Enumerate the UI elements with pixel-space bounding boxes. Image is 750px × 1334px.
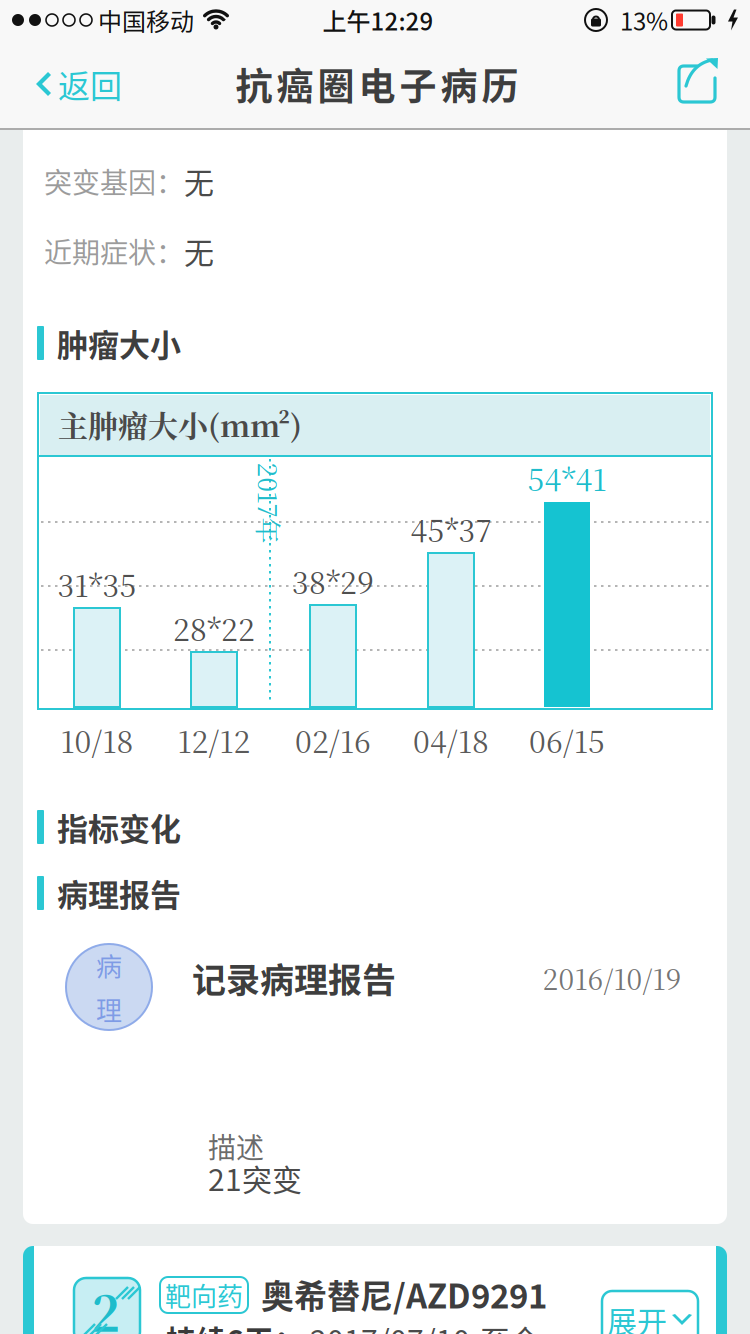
staticText: 2: [91, 1276, 120, 1334]
staticText: 10/18: [60, 718, 133, 761]
staticText: 突变基因：: [44, 161, 184, 201]
button[interactable]: [677, 60, 719, 106]
staticText: 2016/10/19: [542, 958, 681, 998]
staticText: 上午12:29: [322, 3, 433, 37]
staticText: 04/18: [413, 718, 489, 761]
staticText: 记录病理报告: [192, 953, 396, 1003]
button[interactable]: 病: [23, 930, 727, 1044]
staticText: 指标变化: [57, 805, 181, 849]
staticText: 返回: [58, 61, 122, 107]
staticText: 54*41: [527, 456, 606, 499]
staticText: 病理报告: [57, 871, 181, 915]
staticText: 45*37: [410, 507, 491, 550]
staticText: 无: [184, 159, 214, 203]
staticText: 02/16: [295, 718, 371, 761]
button[interactable]: 展开: [602, 1291, 698, 1334]
staticText: 2017年: [228, 484, 309, 522]
staticText: 31*35: [57, 562, 136, 605]
staticText: 持续6天：: [166, 1317, 304, 1334]
staticText: 中国移动: [98, 3, 194, 37]
button[interactable]: 返回: [32, 61, 122, 107]
staticText: 无: [184, 229, 214, 273]
staticText: 近期症状：: [44, 231, 184, 271]
staticText: 12/12: [177, 718, 250, 761]
staticText: 38*29: [292, 559, 374, 602]
staticText: 13%: [620, 3, 668, 37]
staticText: 2017/07/10-至今: [310, 1317, 540, 1334]
staticText: 抗癌圈电子病历: [235, 57, 518, 111]
staticText: 主肿瘤大小(mm²): [58, 402, 302, 445]
staticText: 描述: [208, 1126, 264, 1166]
staticText: 奥希替尼/AZD9291: [261, 1270, 547, 1318]
staticText: 理: [96, 990, 122, 1028]
staticText: 28*22: [173, 606, 255, 649]
staticText: 06/15: [529, 718, 605, 761]
staticText: 肿瘤大小: [57, 321, 181, 365]
staticText: 展开: [607, 1298, 667, 1334]
staticText: 21突变: [208, 1156, 302, 1200]
staticText: 病: [96, 946, 122, 984]
staticText: 靶向药: [165, 1276, 243, 1314]
